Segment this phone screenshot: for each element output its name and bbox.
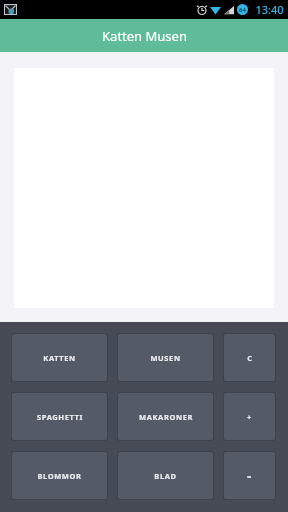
button[interactable]: BLAD — [118, 452, 213, 499]
button[interactable]: = — [224, 452, 275, 499]
staticText: Katten Musen — [102, 27, 187, 45]
staticText: BLAD — [154, 471, 177, 481]
button[interactable]: KATTEN — [12, 334, 107, 381]
staticText: MAKARONER — [139, 412, 193, 422]
staticText: = — [247, 471, 252, 481]
button[interactable]: MAKARONER — [118, 393, 213, 440]
button[interactable]: SPAGHETTI — [12, 393, 107, 440]
button[interactable]: C — [224, 334, 275, 381]
staticText: SPAGHETTI — [37, 412, 83, 422]
button[interactable]: MUSEN — [118, 334, 213, 381]
staticText: KATTEN — [43, 353, 76, 363]
staticText: BLOMMOR — [37, 471, 82, 481]
button[interactable]: BLOMMOR — [12, 452, 107, 499]
staticText: 64 — [239, 6, 246, 14]
staticText: C — [247, 353, 253, 363]
button[interactable]: + — [224, 393, 275, 440]
staticText: 13:40 — [255, 2, 284, 17]
staticText: MUSEN — [150, 353, 181, 363]
staticText: + — [247, 412, 252, 422]
